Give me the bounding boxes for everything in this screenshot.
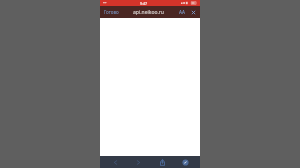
button[interactable]: Text size options xyxy=(178,8,186,16)
button[interactable]: Bookmarks xyxy=(178,156,192,168)
button[interactable]: Back xyxy=(108,156,122,168)
staticText: api.neikoo.ru xyxy=(133,9,164,16)
staticText: 9:47 xyxy=(140,1,147,6)
staticText: Готово xyxy=(104,9,119,15)
button[interactable]: Готово xyxy=(103,8,120,16)
button[interactable]: Share xyxy=(155,156,169,168)
staticText: AA xyxy=(179,9,185,15)
button[interactable]: Close xyxy=(189,8,197,16)
staticText: ••• xyxy=(103,1,107,5)
button[interactable]: Forward xyxy=(131,156,145,168)
